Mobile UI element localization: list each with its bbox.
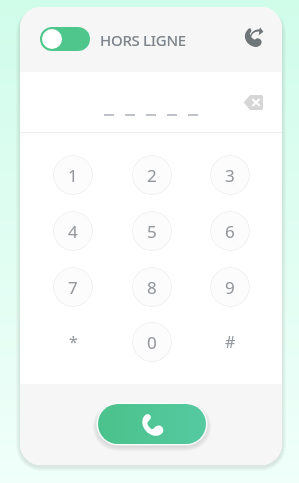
button[interactable]: 8 [132, 267, 172, 307]
staticText: 3 [225, 164, 235, 187]
staticText: * [69, 331, 78, 353]
staticText: 2 [147, 164, 157, 187]
button[interactable]: Call [98, 404, 206, 444]
button[interactable]: 5 [132, 211, 172, 251]
button[interactable]: 2 [132, 155, 172, 195]
button[interactable]: 3 [210, 155, 250, 195]
staticText: 6 [225, 220, 235, 243]
button[interactable]: 6 [210, 211, 250, 251]
staticText: 8 [147, 276, 157, 299]
staticText: 1 [68, 164, 78, 187]
button[interactable]: 9 [210, 267, 250, 307]
button[interactable]: Call forward [233, 17, 273, 57]
button[interactable]: 1 [53, 155, 93, 195]
button[interactable]: * [53, 322, 93, 362]
staticText: 9 [225, 276, 235, 299]
button[interactable]: 7 [53, 267, 93, 307]
button[interactable]: 0 [132, 322, 172, 362]
staticText: HORS LIGNE [100, 30, 186, 50]
button[interactable]: # [210, 322, 250, 362]
staticText: 0 [147, 331, 157, 354]
button[interactable]: Offline toggle [40, 27, 90, 51]
staticText: # [225, 331, 236, 353]
staticText: 4 [68, 220, 78, 243]
staticText: 5 [147, 220, 157, 243]
button[interactable]: 4 [53, 211, 93, 251]
staticText: 7 [68, 276, 78, 299]
button[interactable]: Backspace [238, 90, 268, 114]
